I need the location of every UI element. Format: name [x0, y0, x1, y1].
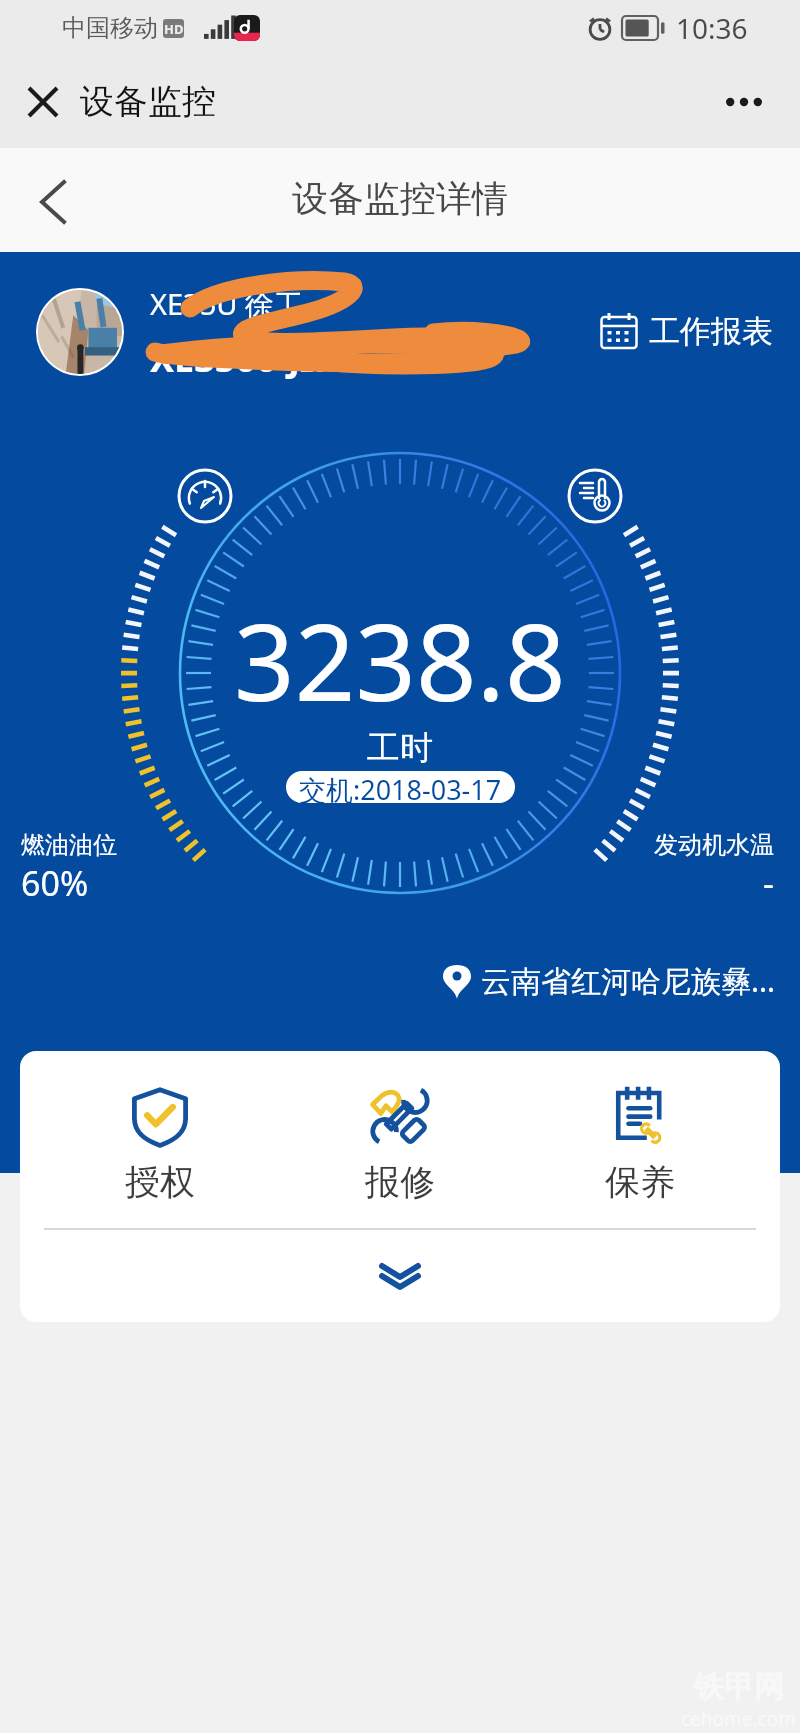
staticText: 工作报表: [649, 312, 773, 351]
staticText: XE3500-JIKA...: [150, 334, 394, 383]
staticText: 授权: [125, 1160, 195, 1204]
staticText: 10:36: [676, 9, 748, 47]
staticText: 设备监控: [80, 80, 216, 123]
staticText: -: [763, 860, 774, 906]
button[interactable]: 保养: [520, 1051, 760, 1228]
staticText: 工时: [367, 727, 433, 769]
button[interactable]: More options: [713, 71, 775, 133]
staticText: XE35U 徐工: [150, 284, 304, 324]
staticText: 云南省红河哈尼族彝...: [481, 960, 776, 1001]
staticText: 设备监控详情: [292, 176, 508, 221]
staticText: 中国移动: [62, 13, 158, 43]
button[interactable]: 工作报表: [600, 306, 773, 356]
button[interactable]: 报修: [280, 1051, 520, 1228]
staticText: 燃油油位: [21, 830, 117, 860]
button[interactable]: Close: [12, 71, 74, 133]
staticText: 铁甲网: [694, 1668, 784, 1706]
staticText: 发动机水温: [654, 830, 774, 860]
staticText: 保养: [605, 1160, 675, 1204]
staticText: 交机:2018-03-17: [299, 771, 502, 803]
staticText: HD: [164, 20, 184, 38]
button[interactable]: Expand: [20, 1230, 780, 1322]
staticText: 60%: [21, 860, 89, 906]
button[interactable]: 授权: [40, 1051, 280, 1228]
button[interactable]: Back: [18, 166, 86, 234]
staticText: 3238.8: [234, 588, 566, 732]
staticText: 报修: [365, 1160, 435, 1204]
